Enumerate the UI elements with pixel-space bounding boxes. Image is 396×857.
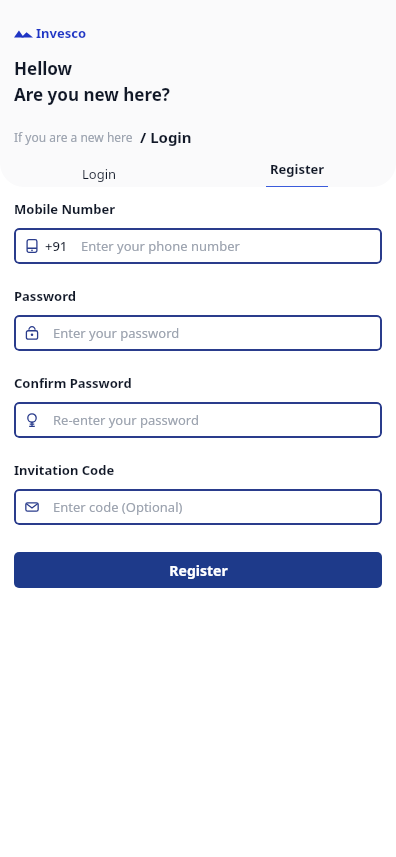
staticText: Password [14,287,76,305]
button[interactable]: Login [0,160,198,187]
staticText: Register [169,561,228,580]
button[interactable]: Phone number [14,228,382,264]
staticText: Enter your password [53,324,180,342]
other: Password [25,326,39,340]
staticText: Enter code (Optional) [53,498,183,516]
staticText: Invesco [36,24,87,42]
button[interactable]: / Login [140,127,192,147]
staticText: / Login [140,127,192,147]
staticText: Hellow [14,57,73,80]
staticText: Login [82,165,117,183]
staticText: Register [270,160,325,178]
staticText: Mobile Number [14,200,115,218]
button[interactable]: Register [198,160,396,187]
other: Confirm password [25,413,39,427]
button[interactable]: Invitation code [14,489,382,525]
staticText: Invitation Code [14,461,115,479]
staticText: Re-enter your password [53,411,199,429]
button[interactable]: Password [14,315,382,351]
staticText: Enter your phone number [81,237,240,255]
other: Phone number [25,239,39,253]
button[interactable]: Confirm password [14,402,382,438]
staticText: Are you new here? [14,83,170,106]
staticText: +91 [45,237,68,255]
staticText: If you are a new here [14,129,133,145]
button[interactable]: Invesco logo [14,24,87,42]
other: Invitation code [25,500,39,514]
button[interactable]: Register [14,552,382,588]
staticText: Confirm Password [14,374,132,392]
